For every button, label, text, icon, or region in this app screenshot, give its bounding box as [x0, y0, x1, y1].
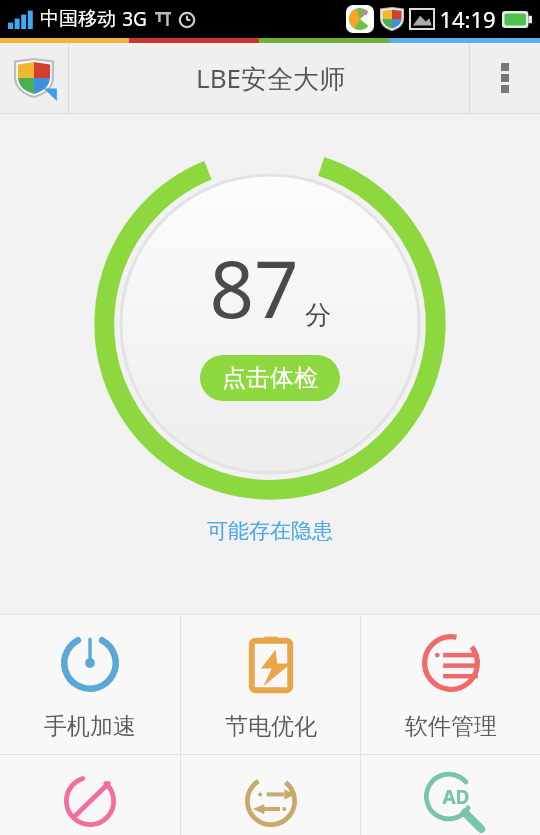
other: LBE 安全大师 — [12, 56, 56, 100]
staticText: 14:19 — [439, 4, 496, 34]
button[interactable]: 点击体检 — [200, 355, 340, 401]
staticText: 可能存在隐患 — [207, 518, 333, 544]
button[interactable]: 节电优化 — [181, 615, 360, 754]
staticText: 87 — [209, 235, 299, 341]
button[interactable]: LBE 安全大师 — [0, 43, 68, 113]
staticText: 点击体检 — [222, 363, 318, 393]
staticText: 节电优化 — [225, 712, 317, 741]
staticText: LBE安全大师 — [196, 60, 345, 96]
button[interactable]: More options — [470, 43, 540, 113]
staticText: 分 — [305, 299, 331, 332]
button[interactable]: 流量监控 — [181, 755, 360, 835]
button[interactable]: 软件管理 — [361, 615, 540, 754]
button[interactable]: 广告清理 — [361, 755, 540, 835]
staticText: 手机加速 — [44, 712, 136, 741]
staticText: 3G — [122, 6, 147, 32]
staticText: AD — [442, 784, 470, 810]
button[interactable]: 手机加速 — [0, 615, 180, 754]
staticText: 中国移动 — [40, 7, 116, 31]
button[interactable]: 骚扰拦截 — [0, 755, 180, 835]
staticText: 软件管理 — [405, 712, 497, 741]
